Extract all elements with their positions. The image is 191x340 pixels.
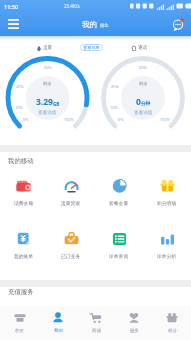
staticText: 查看详情 <box>134 110 153 116</box>
staticText: 积分 <box>168 328 177 334</box>
staticText: 0% <box>118 117 124 122</box>
staticText: 100% <box>160 117 171 122</box>
staticText: 服务 <box>130 328 139 334</box>
button[interactable]: 我的 <box>39 306 77 340</box>
button[interactable]: Messages <box>165 12 191 36</box>
button[interactable]: 积分明细 <box>143 174 191 227</box>
staticText: 查看已用 <box>83 45 100 50</box>
staticText: 10% <box>15 105 23 110</box>
button[interactable]: 话费余额 <box>0 174 47 227</box>
staticText: 流量 <box>43 45 53 51</box>
staticText: 我的 <box>82 20 97 29</box>
button[interactable]: 详单查询 <box>95 227 143 280</box>
staticText: 我的 <box>54 328 63 334</box>
button[interactable]: 0% <box>95 55 191 145</box>
staticText: 已订业务 <box>61 253 81 259</box>
staticText: 我的账单 <box>14 253 34 259</box>
staticText: 套餐余量 <box>109 200 129 206</box>
staticText: 商城 <box>92 328 101 334</box>
staticText: 通话 <box>138 45 148 51</box>
staticText: 流量管家 <box>61 200 81 206</box>
button[interactable]: 流量管家 <box>47 174 95 227</box>
staticText: 首页 <box>15 328 24 334</box>
staticText: 25% <box>111 84 119 89</box>
staticText: 3.29 <box>36 96 53 108</box>
staticText: 100% <box>64 117 75 122</box>
staticText: GB <box>53 101 60 107</box>
staticText: 剩余 <box>43 81 52 86</box>
staticText: 积分明细 <box>157 200 177 206</box>
button[interactable]: Menu <box>0 12 26 36</box>
staticText: 湖北 <box>100 23 109 28</box>
staticText: 分钟 <box>141 101 151 107</box>
button[interactable]: 通话 <box>132 45 148 51</box>
staticText: 0 <box>136 96 141 108</box>
staticText: 25% <box>16 84 24 89</box>
staticText: 详单分析 <box>157 253 177 259</box>
staticText: 50% <box>139 65 147 70</box>
button[interactable]: 商城 <box>77 306 115 340</box>
button[interactable]: 流量 <box>37 45 53 51</box>
button[interactable]: 积分 <box>153 306 191 340</box>
button[interactable]: 首页 <box>0 306 39 340</box>
button[interactable]: 已订业务 <box>47 227 95 280</box>
staticText: 50% <box>44 65 52 70</box>
button[interactable]: 0% <box>0 55 95 145</box>
staticText: 11:50 <box>4 3 19 10</box>
staticText: 查看详情 <box>38 110 57 116</box>
staticText: 我的移动 <box>8 157 34 165</box>
staticText: 话费余额 <box>14 200 34 206</box>
button[interactable]: 套餐余量 <box>95 174 143 227</box>
staticText: 23.4K/s <box>64 3 80 9</box>
button[interactable]: 查看已用 <box>80 44 103 51</box>
staticText: 剩余 <box>139 81 148 86</box>
button[interactable]: 服务 <box>115 306 153 340</box>
button[interactable]: 我的账单 <box>0 227 47 280</box>
staticText: 0% <box>23 117 29 122</box>
staticText: 充值服务 <box>8 288 34 296</box>
button[interactable]: 详单分析 <box>143 227 191 280</box>
staticText: 10% <box>110 105 118 110</box>
staticText: 详单查询 <box>109 253 129 259</box>
